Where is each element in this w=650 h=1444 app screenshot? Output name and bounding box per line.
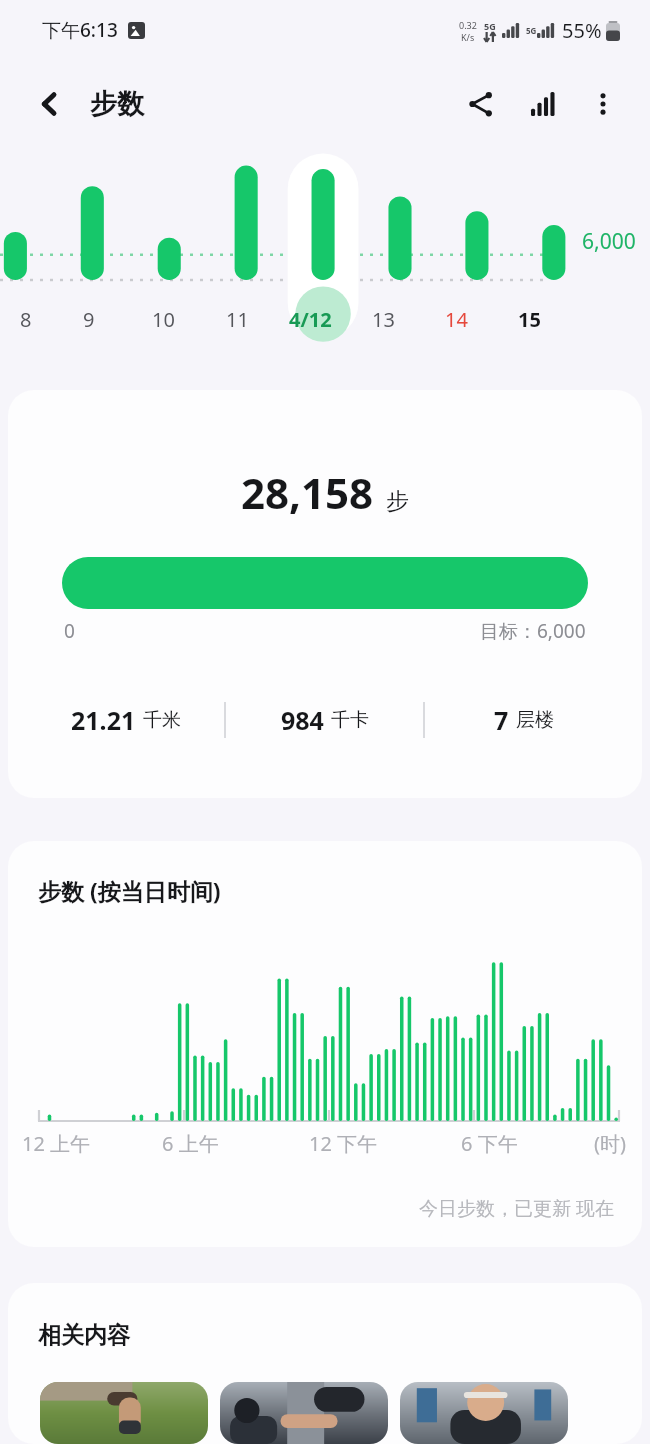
staticText: 6 下午 — [461, 1130, 518, 1157]
button[interactable]: 13 — [347, 296, 420, 342]
staticText: 相关内容 — [38, 1321, 130, 1350]
button[interactable]: Related article 1 — [40, 1382, 208, 1444]
staticText: 9 — [83, 306, 95, 333]
staticText: 13 — [372, 306, 395, 333]
staticText: 21.21 — [71, 703, 136, 737]
staticText: 今日步数，已更新 现在 — [419, 1195, 614, 1221]
button[interactable]: 7 — [425, 703, 622, 737]
staticText: 5G — [526, 25, 537, 36]
button[interactable]: History chart — [514, 75, 572, 133]
staticText: (时) — [594, 1130, 626, 1157]
staticText: 984 — [281, 703, 324, 737]
staticText: 步数 — [90, 87, 144, 121]
button[interactable]: More options — [574, 75, 632, 133]
staticText: 6 上午 — [162, 1130, 219, 1157]
button[interactable]: 10 — [126, 296, 200, 342]
button[interactable]: Back — [22, 76, 78, 132]
button[interactable]: 21.21 — [28, 703, 224, 737]
button[interactable]: Related article 2 — [220, 1382, 388, 1444]
staticText: 7 — [494, 703, 509, 737]
staticText: 0.32 — [459, 19, 477, 31]
staticText: 14 — [445, 306, 468, 333]
button[interactable]: 984 — [226, 703, 423, 737]
staticText: 目标：6,000 — [480, 618, 586, 644]
button[interactable]: 15 — [493, 296, 566, 342]
staticText: K/s — [461, 31, 475, 43]
staticText: 10 — [152, 306, 175, 333]
staticText: 6,000 — [582, 227, 636, 256]
staticText: 11 — [226, 306, 249, 333]
staticText: 12 上午 — [22, 1130, 91, 1157]
button[interactable]: 4/12 — [274, 296, 347, 342]
staticText: 层楼 — [516, 708, 554, 732]
staticText: 千卡 — [331, 708, 369, 732]
staticText: 步数 (按当日时间) — [38, 875, 221, 906]
button[interactable]: 9 — [52, 296, 126, 342]
button[interactable]: 步数 (按当日时间) — [8, 841, 642, 1247]
button[interactable]: Related article 3 — [400, 1382, 568, 1444]
button[interactable]: 28,158 — [8, 390, 642, 798]
button[interactable]: 14 — [420, 296, 493, 342]
staticText: 28,158 — [241, 464, 374, 521]
staticText: 步 — [386, 487, 409, 516]
button[interactable]: 11 — [200, 296, 274, 342]
staticText: 5G — [484, 20, 496, 32]
button[interactable]: Share — [452, 75, 510, 133]
staticText: 千米 — [143, 708, 181, 732]
button[interactable]: 8 — [0, 296, 52, 342]
staticText: 4/12 — [289, 306, 332, 333]
staticText: 55% — [562, 17, 602, 44]
staticText: 下午6:13 — [42, 17, 118, 43]
staticText: 0 — [64, 618, 75, 644]
staticText: 12 下午 — [309, 1130, 378, 1157]
staticText: 15 — [518, 306, 541, 333]
staticText: 8 — [20, 306, 32, 333]
